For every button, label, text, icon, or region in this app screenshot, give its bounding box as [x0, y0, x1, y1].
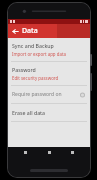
button[interactable]: Sync and Backup [8, 38, 90, 61]
staticText: Data [22, 26, 38, 36]
button[interactable]: Erase all data [8, 104, 90, 121]
button[interactable]: Require password on screen [8, 86, 90, 103]
button[interactable]: Password [8, 62, 90, 85]
staticText: Sync and Backup [12, 42, 54, 49]
staticText: Require password on screen [12, 91, 76, 98]
button[interactable]: Back [20, 147, 31, 158]
staticText: Edit security password [12, 75, 59, 81]
button[interactable]: Home [44, 147, 55, 158]
staticText: Password [12, 66, 36, 73]
button[interactable]: Back [8, 24, 22, 38]
button[interactable]: Recents [67, 147, 78, 158]
staticText: Import or export app data [12, 51, 66, 57]
staticText: Erase all data [12, 109, 46, 116]
